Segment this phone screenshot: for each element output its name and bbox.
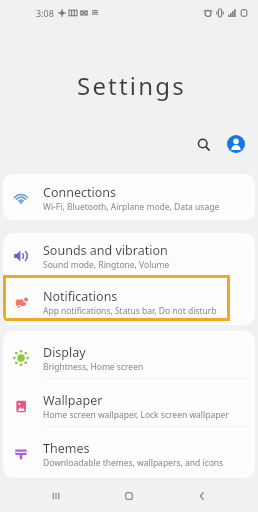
button[interactable]: Sounds and vibration	[3, 233, 255, 279]
staticText: Wallpaper	[43, 392, 103, 409]
staticText: App notifications, Status bar, Do not di…	[43, 305, 217, 317]
button[interactable]: Display	[3, 331, 255, 378]
staticText: Notifications	[43, 288, 118, 305]
button[interactable]: Home	[112, 479, 146, 512]
staticText: Sounds and vibration	[43, 242, 168, 259]
staticText: Connections	[43, 184, 116, 201]
button[interactable]: Wallpaper	[3, 379, 255, 426]
button[interactable]: Search	[188, 129, 218, 159]
staticText: Sound mode, Ringtone, Volume	[43, 259, 170, 271]
staticText: Brightness, Home screen	[43, 361, 144, 373]
staticText: 3:08	[36, 7, 54, 19]
button[interactable]: Account	[227, 135, 245, 153]
button[interactable]: Themes	[3, 427, 255, 474]
staticText: Home screen wallpaper, Lock screen wallp…	[43, 409, 229, 421]
staticText: Themes	[43, 440, 90, 457]
staticText: Downloadable themes, wallpapers, and ico…	[43, 457, 224, 469]
button[interactable]: Recents	[39, 479, 73, 512]
staticText: Settings	[77, 69, 186, 102]
button[interactable]: Notifications	[3, 279, 255, 325]
button[interactable]: Connections	[3, 174, 255, 220]
staticText: Wi-Fi, Bluetooth, Airplane mode, Data us…	[43, 201, 220, 213]
button[interactable]: Back	[185, 479, 219, 512]
staticText: Display	[43, 344, 86, 361]
